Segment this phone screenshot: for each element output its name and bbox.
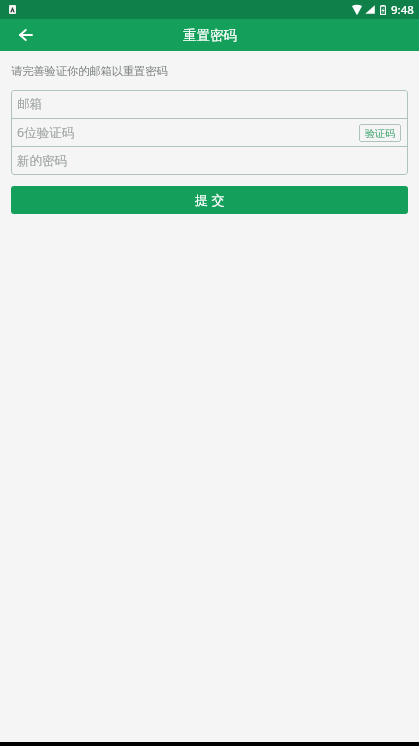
button[interactable]: Back [0,19,50,51]
button[interactable]: 验证码 [359,124,401,142]
staticText: 验证码 [365,127,395,140]
staticText: 重置密码 [183,27,237,44]
staticText: 6位验证码 [17,124,75,141]
staticText: 提 交 [195,191,225,209]
staticText: 请完善验证你的邮箱以重置密码 [11,64,168,78]
staticText: 9:48 [391,2,414,18]
staticText: 邮箱 [17,96,42,112]
staticText: 新的密码 [17,153,67,169]
button[interactable]: 邮箱 [11,90,408,118]
button[interactable]: 6位验证码 [11,119,408,146]
button[interactable]: 提 交 [11,186,408,214]
button[interactable]: 新的密码 [11,147,408,175]
